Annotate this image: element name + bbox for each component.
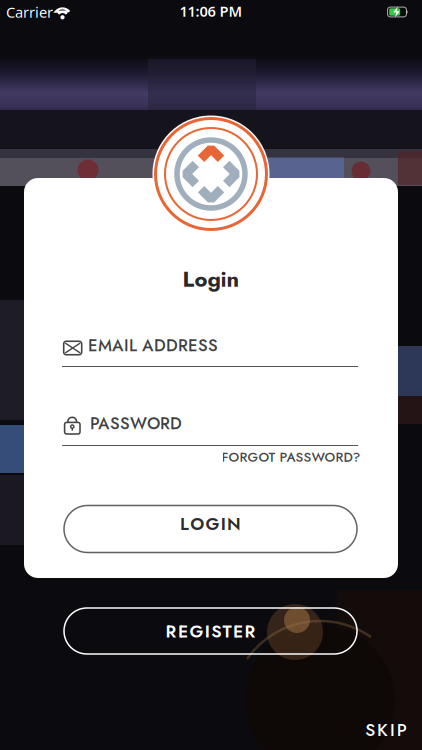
- staticText: G: [189, 619, 203, 644]
- staticText: 11:06 PM: [179, 1, 242, 21]
- staticText: E: [178, 619, 188, 644]
- button[interactable]: PASSWORD: [62, 411, 358, 437]
- staticText: S: [365, 717, 375, 742]
- staticText: I: [205, 619, 210, 644]
- staticText: L: [180, 511, 189, 536]
- staticText: I: [221, 511, 226, 536]
- button[interactable]: S: [365, 717, 407, 742]
- staticText: R: [244, 619, 255, 644]
- staticText: E: [233, 619, 243, 644]
- staticText: S: [211, 619, 221, 644]
- staticText: PASSWORD: [90, 411, 182, 436]
- staticText: P: [397, 717, 407, 742]
- staticText: O: [190, 511, 204, 536]
- staticText: FORGOT PASSWORD?: [221, 447, 360, 467]
- staticText: G: [205, 511, 219, 536]
- staticText: I: [390, 717, 395, 742]
- staticText: EMAIL ADDRESS: [88, 333, 218, 357]
- staticText: Login: [182, 263, 239, 295]
- staticText: T: [223, 619, 232, 644]
- staticText: R: [166, 619, 177, 644]
- staticText: K: [377, 717, 388, 742]
- staticText: N: [227, 511, 241, 536]
- button[interactable]: R: [64, 608, 357, 654]
- button[interactable]: EMAIL ADDRESS: [62, 333, 358, 359]
- button[interactable]: L: [64, 505, 357, 552]
- staticText: Carrier: [6, 2, 53, 22]
- button[interactable]: FORGOT PASSWORD?: [221, 447, 360, 467]
